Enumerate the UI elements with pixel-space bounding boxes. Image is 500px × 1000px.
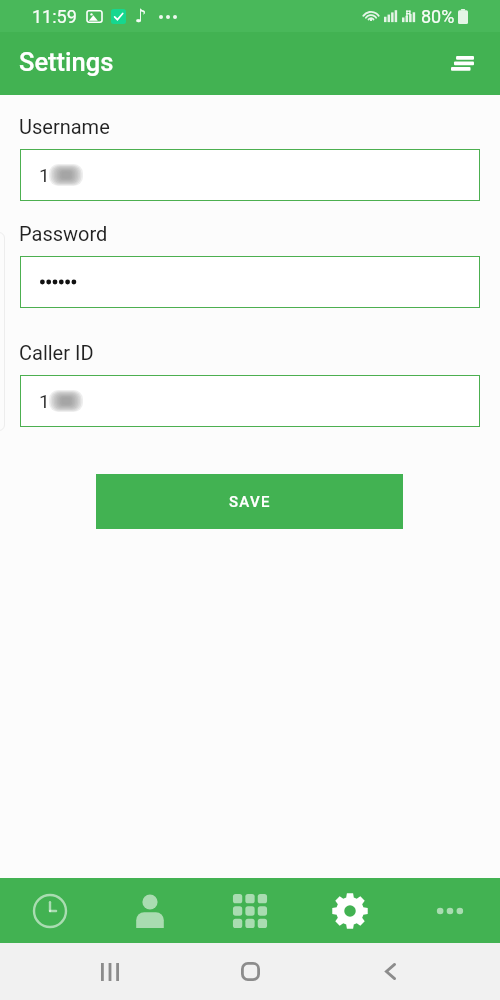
staticText: 11:59 [32, 6, 77, 27]
staticText: Username [19, 115, 110, 138]
button[interactable]: Menu [439, 40, 485, 86]
button[interactable]: SAVE [96, 474, 403, 529]
button[interactable]: Keypad [200, 878, 300, 943]
button[interactable]: Settings [300, 878, 400, 943]
staticText: Password [19, 222, 108, 245]
button[interactable] [20, 256, 480, 308]
staticText: 1 [39, 390, 50, 412]
button[interactable]: Contacts [100, 878, 200, 943]
button[interactable]: 1 [20, 375, 480, 427]
staticText: Settings [19, 47, 114, 77]
staticText: 80% [421, 6, 455, 27]
button[interactable]: Back [358, 943, 422, 1000]
button[interactable]: 1 [20, 149, 480, 201]
staticText: 1 [39, 164, 50, 186]
staticText: Caller ID [19, 341, 94, 364]
button[interactable]: Recents [78, 943, 142, 1000]
button[interactable]: Home [218, 943, 282, 1000]
button[interactable]: More [400, 878, 500, 943]
staticText: ♪ [135, 5, 147, 26]
staticText: SAVE [229, 493, 271, 511]
button[interactable]: Recents [0, 878, 100, 943]
